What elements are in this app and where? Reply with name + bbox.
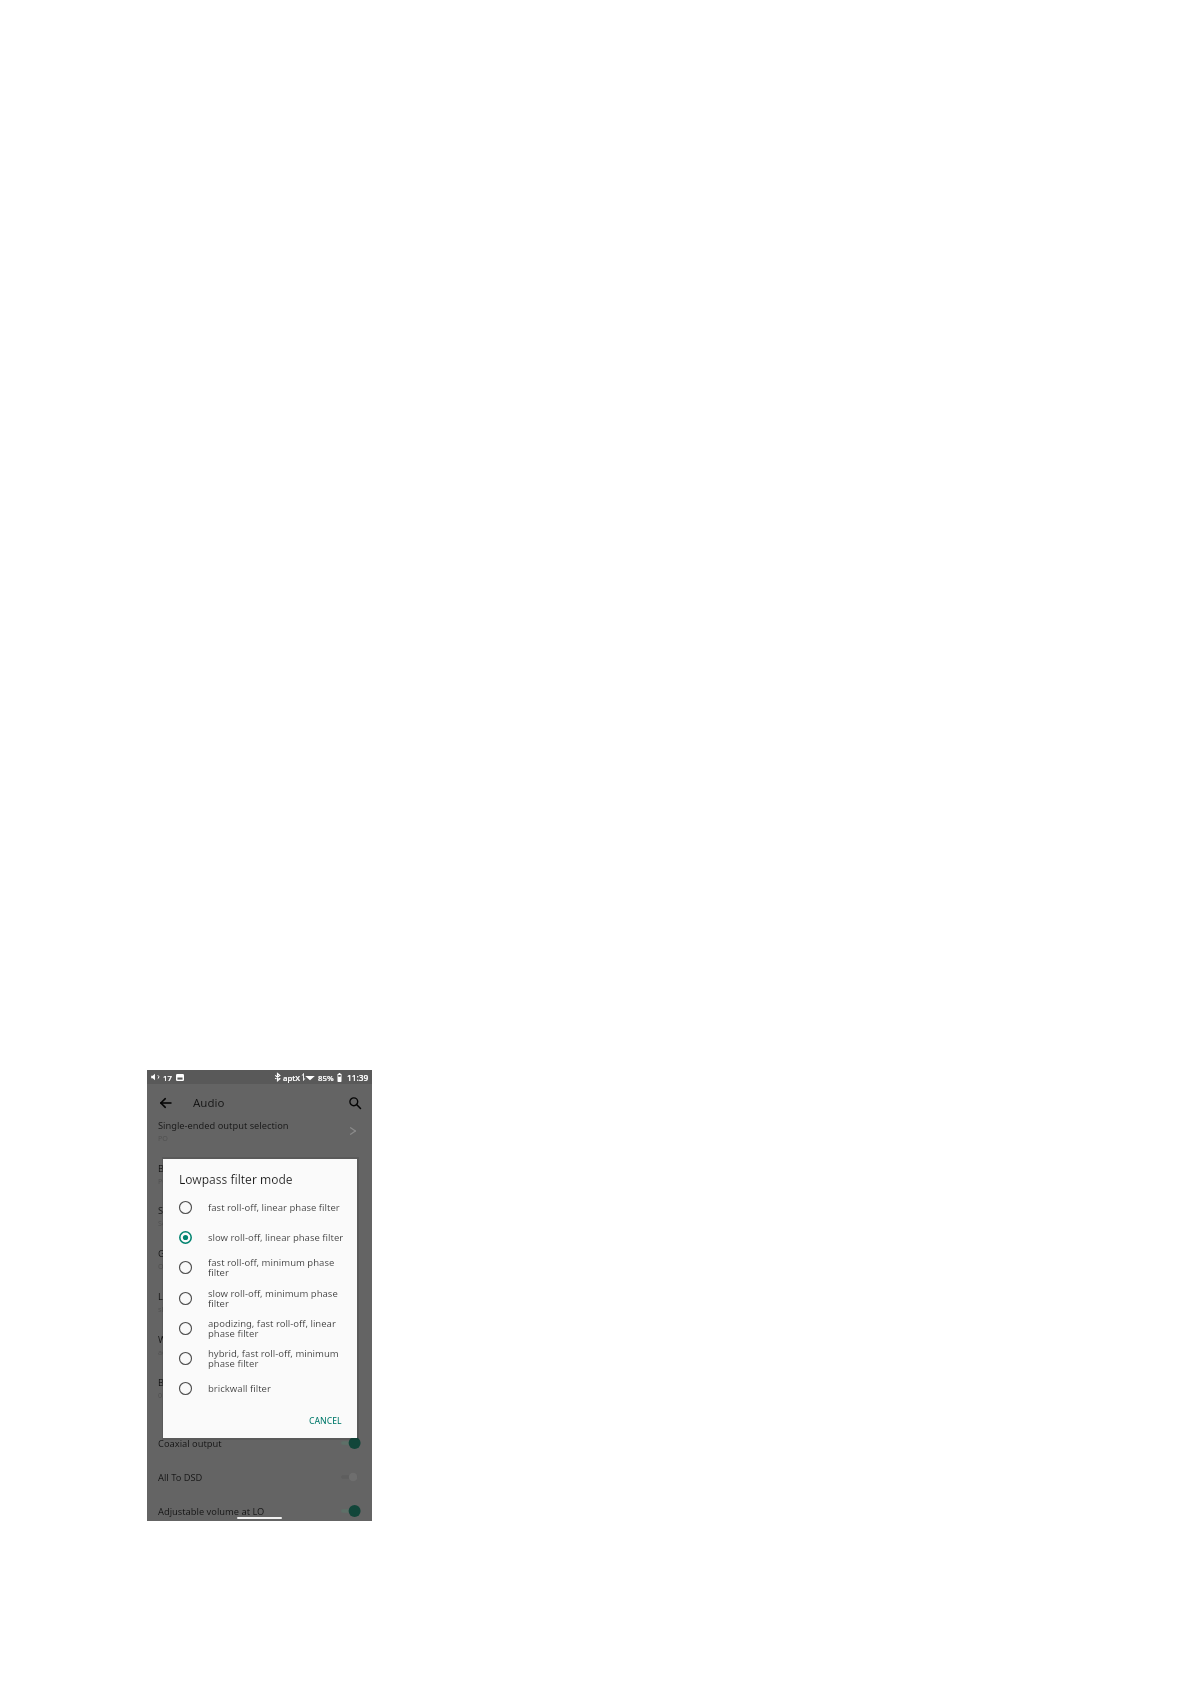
staticText: Sound effect (158, 1218, 201, 1228)
staticText: slow roll-off, minimum phase filter (208, 1287, 344, 1310)
staticText: fast roll-off, linear phase filter (208, 1201, 340, 1214)
button[interactable]: brickwall filter (163, 1373, 357, 1403)
staticText: brickwall filter (208, 1382, 271, 1395)
staticText: Single-ended output selection (158, 1119, 289, 1132)
button[interactable]: Navigate up (157, 1094, 175, 1112)
button[interactable]: Wheel mode (147, 1323, 372, 1366)
button[interactable]: Single-ended output selection (147, 1109, 372, 1152)
button[interactable]: Gain (147, 1237, 372, 1280)
button[interactable]: slow roll-off, linear phase filter (163, 1222, 357, 1252)
button[interactable]: Lowpass filter mode (147, 1280, 372, 1323)
button[interactable]: hybrid, fast roll-off, minimum phase fil… (163, 1343, 357, 1373)
staticText: aptX (283, 1073, 301, 1084)
button[interactable]: CANCEL (304, 1411, 347, 1431)
staticText: 11:39 (347, 1072, 369, 1083)
staticText: Coaxial output (158, 1437, 339, 1450)
staticText: All To DSD (158, 1471, 339, 1484)
button[interactable]: slow roll-off, minimum phase filter (163, 1283, 357, 1313)
staticText: hybrid, fast roll-off, minimum phase fil… (208, 1347, 344, 1370)
button[interactable]: fast roll-off, linear phase filter (163, 1192, 357, 1222)
staticText: adjust volume (158, 1347, 206, 1357)
button[interactable]: Search (346, 1094, 364, 1112)
staticText: Lowpass filter mode (158, 1290, 247, 1303)
button[interactable]: Balanced output selection (147, 1152, 372, 1195)
staticText: Off (158, 1261, 169, 1271)
button[interactable]: fast roll-off, minimum phase filter (163, 1252, 357, 1282)
button[interactable]: All To DSD (147, 1460, 372, 1494)
staticText: Adjustable volume at LO (158, 1505, 339, 1518)
staticText: slow roll-off, linear phase filter (208, 1231, 344, 1244)
button[interactable]: Sound effect (147, 1194, 372, 1237)
staticText: Balanced output selection (158, 1162, 272, 1175)
staticText: apodizing, fast roll-off, linear phase f… (208, 1317, 344, 1340)
button[interactable]: Balance (147, 1366, 372, 1409)
button[interactable]: Coaxial output (147, 1426, 372, 1460)
staticText: Wheel mode (158, 1333, 213, 1346)
staticText: fast roll-off, minimum phase filter (208, 1256, 344, 1279)
staticText: Lowpass filter mode (179, 1171, 293, 1187)
staticText: Sound effect (158, 1204, 214, 1217)
staticText: Balance (158, 1376, 193, 1389)
button[interactable]: Adjustable volume at LO (147, 1494, 372, 1528)
staticText: 0 (158, 1390, 163, 1400)
staticText: CANCEL (309, 1415, 342, 1427)
staticText: 85% (318, 1073, 334, 1084)
staticText: Gain (158, 1247, 179, 1260)
staticText: 17 (163, 1073, 172, 1084)
staticText: PO (158, 1176, 168, 1186)
staticText: Audio (193, 1095, 225, 1111)
staticText: PO (158, 1133, 168, 1143)
staticText: slow roll-off, linear phase (158, 1304, 243, 1314)
button[interactable]: apodizing, fast roll-off, linear phase f… (163, 1313, 357, 1343)
